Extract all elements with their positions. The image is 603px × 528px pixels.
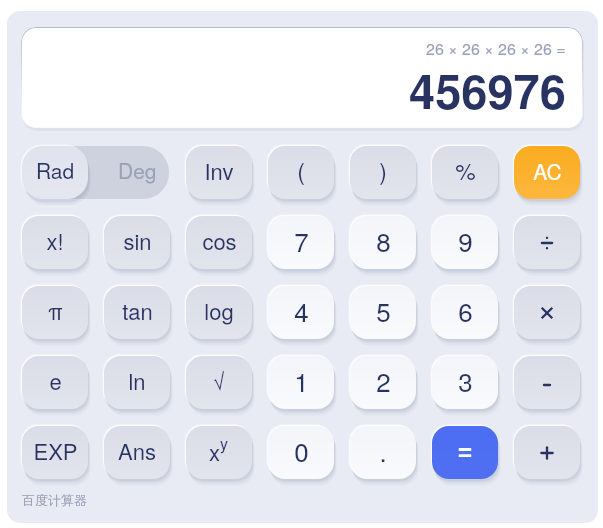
button[interactable]: 7 (268, 216, 334, 269)
button[interactable]: Inv (186, 146, 252, 199)
staticText: 456976 (409, 56, 566, 123)
button[interactable]: x! (22, 216, 88, 269)
button[interactable]: Deg (22, 146, 169, 199)
staticText: 0 (294, 432, 309, 469)
button[interactable]: ln (104, 356, 170, 409)
staticText: cos (202, 225, 237, 257)
button[interactable]: xy (186, 426, 252, 479)
staticText: 9 (458, 222, 473, 259)
staticText: AC (533, 156, 562, 186)
staticText: e (49, 365, 62, 397)
button[interactable]: Multiply (514, 286, 580, 339)
button[interactable]: ) (350, 146, 416, 199)
button[interactable]: AC (514, 146, 580, 199)
button[interactable]: log (186, 286, 252, 339)
button[interactable]: Subtract (514, 356, 580, 409)
staticText: ln (128, 365, 146, 397)
staticText: sin (123, 225, 152, 257)
staticText: 5 (376, 292, 391, 329)
button[interactable]: Rad (22, 146, 88, 199)
other: Subtract (534, 370, 560, 396)
button[interactable]: 0 (268, 426, 334, 479)
staticText: tan (122, 295, 153, 327)
staticText: . (379, 432, 387, 469)
button[interactable]: 1 (268, 356, 334, 409)
other: Divide (534, 230, 560, 256)
button[interactable]: 9 (432, 216, 498, 269)
button[interactable]: sin (104, 216, 170, 269)
button[interactable]: EXP (22, 426, 88, 479)
staticText: Inv (204, 155, 234, 187)
button[interactable]: 4 (268, 286, 334, 339)
staticText: % (455, 154, 476, 187)
staticText: xy (209, 432, 229, 468)
button[interactable]: e (22, 356, 88, 409)
staticText: Deg (118, 155, 157, 185)
button[interactable]: 8 (350, 216, 416, 269)
button[interactable]: ( (268, 146, 334, 199)
button[interactable]: % (432, 146, 498, 199)
staticText: 26 × 26 × 26 × 26 = (426, 37, 566, 60)
button[interactable]: Add (514, 426, 580, 479)
staticText: Ans (118, 435, 156, 467)
staticText: 3 (458, 362, 473, 399)
staticText: 4 (294, 292, 309, 329)
staticText: 2 (376, 362, 391, 399)
staticText: 6 (458, 292, 473, 329)
button[interactable]: 2 (350, 356, 416, 409)
button[interactable]: Equals (432, 426, 498, 479)
button[interactable]: 5 (350, 286, 416, 339)
button[interactable]: Ans (104, 426, 170, 479)
staticText: Rad (36, 155, 75, 185)
staticText: π (48, 295, 63, 327)
staticText: 1 (294, 362, 309, 399)
staticText: ) (379, 154, 387, 187)
staticText: 7 (294, 222, 309, 259)
button[interactable]: 6 (432, 286, 498, 339)
staticText: ( (297, 154, 305, 187)
button[interactable]: cos (186, 216, 252, 269)
button[interactable]: π (22, 286, 88, 339)
button[interactable]: 3 (432, 356, 498, 409)
button[interactable]: tan (104, 286, 170, 339)
staticText: 8 (376, 222, 391, 259)
staticText: log (204, 295, 234, 327)
staticText: 百度计算器 (22, 492, 87, 508)
other: Equals (452, 440, 478, 466)
staticText: EXP (33, 435, 78, 467)
button[interactable]: . (350, 426, 416, 479)
other: Add (534, 440, 560, 466)
other: Multiply (534, 300, 560, 326)
button[interactable]: Divide (514, 216, 580, 269)
button[interactable]: √ (186, 356, 252, 409)
staticText: √ (213, 365, 225, 397)
staticText: x! (46, 225, 64, 257)
